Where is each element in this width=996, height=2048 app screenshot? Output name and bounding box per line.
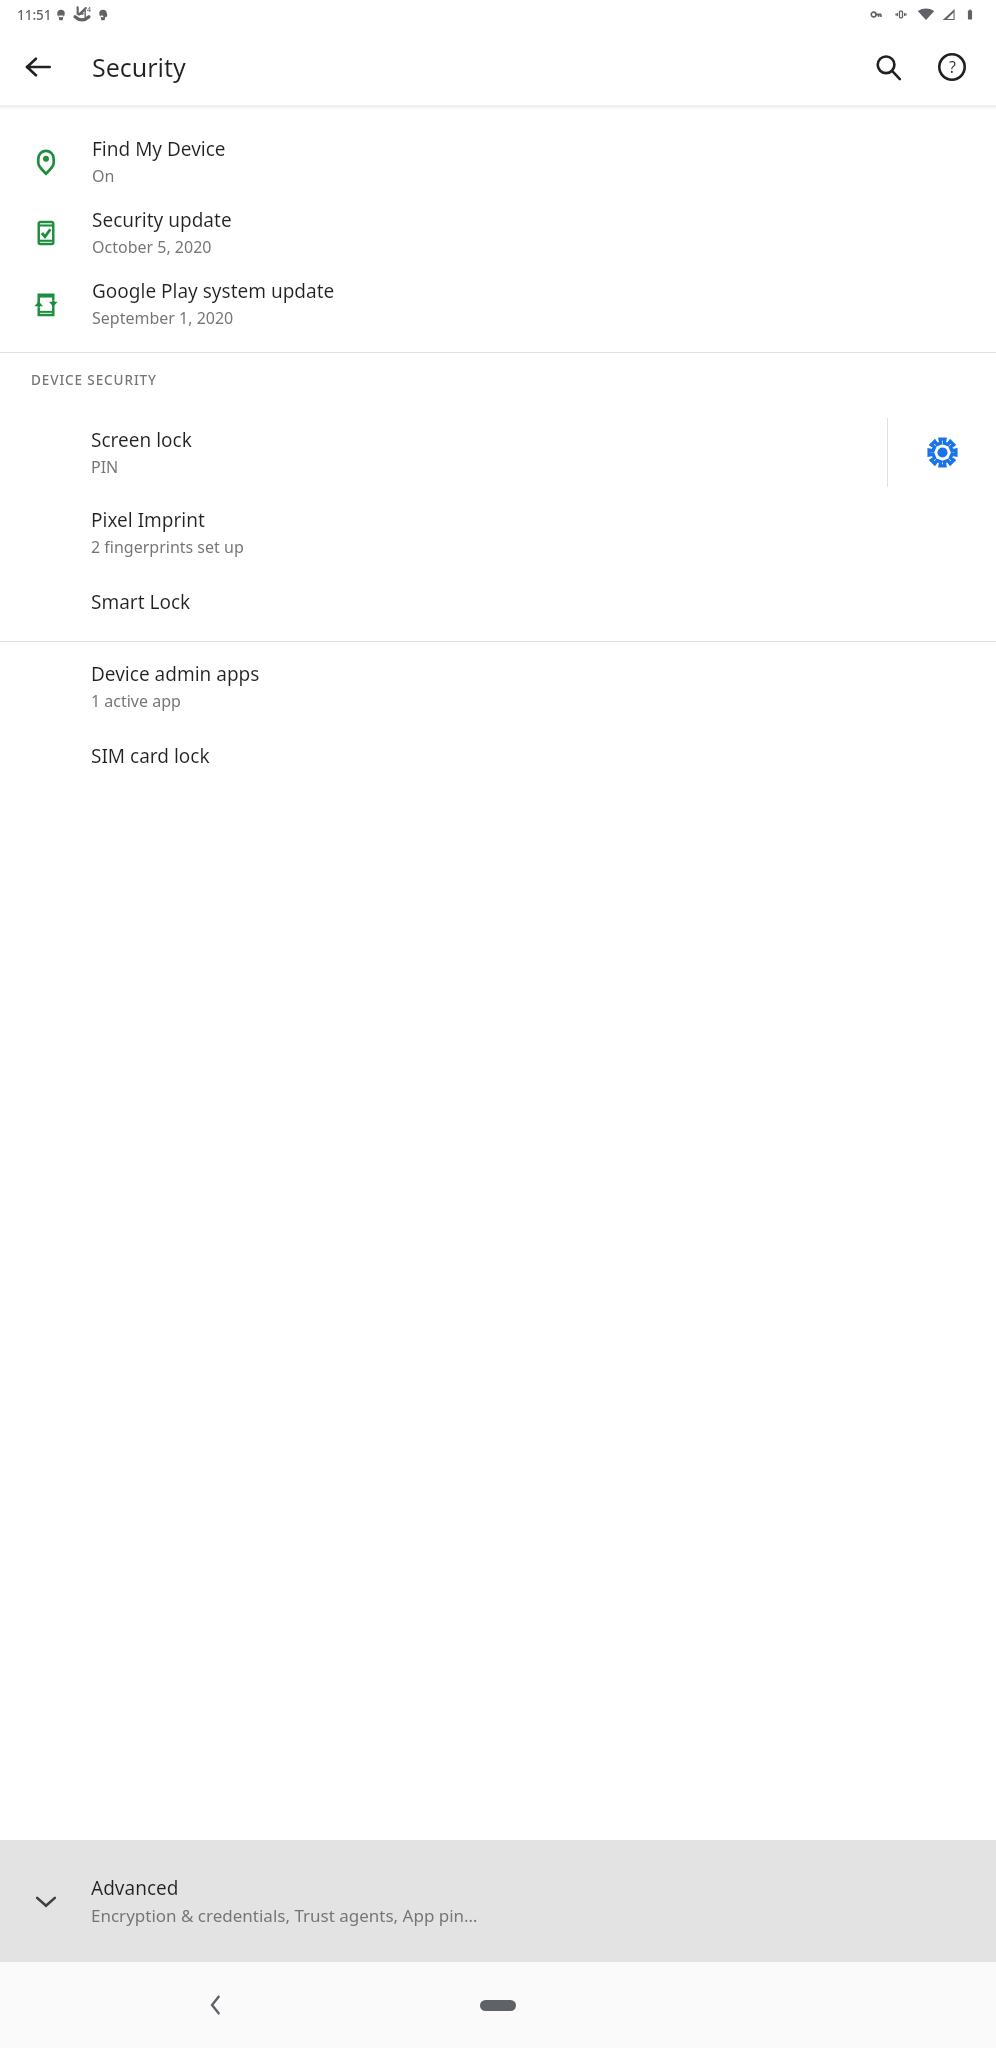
staticText: 1 (81, 5, 89, 23)
staticText: Security update (92, 207, 232, 233)
button[interactable]: Back (8, 37, 68, 97)
staticText: Encryption & credentials, Trust agents, … (91, 1904, 478, 1927)
button[interactable]: Security update (0, 197, 996, 268)
staticText: Find My Device (92, 136, 226, 162)
staticText: October 5, 2020 (92, 236, 212, 258)
staticText: DEVICE SECURITY (31, 371, 157, 389)
button[interactable]: Screen lock (0, 407, 887, 497)
button[interactable]: Help (920, 35, 984, 99)
staticText: 4 (87, 5, 92, 15)
button[interactable]: Pixel Imprint (0, 497, 996, 568)
staticText: PIN (91, 456, 119, 478)
staticText: September 1, 2020 (92, 307, 234, 329)
button[interactable]: Home (438, 1977, 558, 2033)
staticText: ? (949, 56, 956, 78)
button[interactable]: Search (856, 35, 920, 99)
staticText: Device admin apps (91, 661, 260, 687)
button[interactable]: Find My Device (0, 126, 996, 197)
staticText: Google Play system update (92, 278, 335, 304)
staticText: On (92, 165, 115, 187)
staticText: 11:51 (17, 6, 52, 24)
staticText: Advanced (91, 1875, 179, 1901)
staticText: Smart Lock (91, 589, 191, 615)
button[interactable]: Back (168, 1962, 264, 2048)
button[interactable]: Smart Lock (0, 568, 996, 635)
button[interactable]: SIM card lock (0, 722, 996, 789)
staticText: 1 active app (91, 690, 181, 712)
staticText: 2 fingerprints set up (91, 536, 244, 558)
button[interactable]: Advanced (0, 1840, 996, 1962)
staticText: Pixel Imprint (91, 507, 205, 533)
button[interactable]: Google Play system update (0, 268, 996, 339)
staticText: Screen lock (91, 427, 192, 453)
staticText: Security (92, 50, 186, 84)
staticText: SIM card lock (91, 743, 210, 769)
button[interactable]: Screen lock settings (888, 407, 996, 497)
button[interactable]: Device admin apps (0, 651, 996, 722)
